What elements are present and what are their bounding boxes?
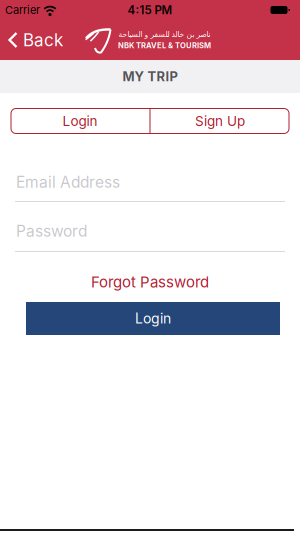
staticText: Sign Up — [195, 113, 245, 129]
button[interactable]: Email Address — [0, 172, 300, 202]
staticText: MY TRIP — [122, 69, 177, 84]
button[interactable]: Login — [10, 108, 149, 134]
staticText: NBK TRAVEL & TOURISM — [118, 41, 211, 50]
staticText: Login — [135, 310, 171, 327]
staticText: Email Address — [16, 173, 120, 191]
button[interactable]: Forgot Password — [91, 272, 209, 292]
staticText: ناصر بن خالد للسفر و السياحة — [118, 30, 210, 39]
staticText: 4:15 PM — [127, 3, 172, 17]
staticText: Login — [62, 113, 97, 129]
staticText: Carrier — [5, 3, 40, 17]
staticText: Back — [23, 30, 63, 50]
button[interactable]: Sign Up — [150, 108, 289, 134]
staticText: Password — [16, 222, 87, 240]
button[interactable]: Login — [26, 302, 280, 335]
button[interactable]: Back — [0, 30, 63, 50]
staticText: Forgot Password — [91, 273, 209, 291]
button[interactable]: Password — [0, 221, 300, 252]
